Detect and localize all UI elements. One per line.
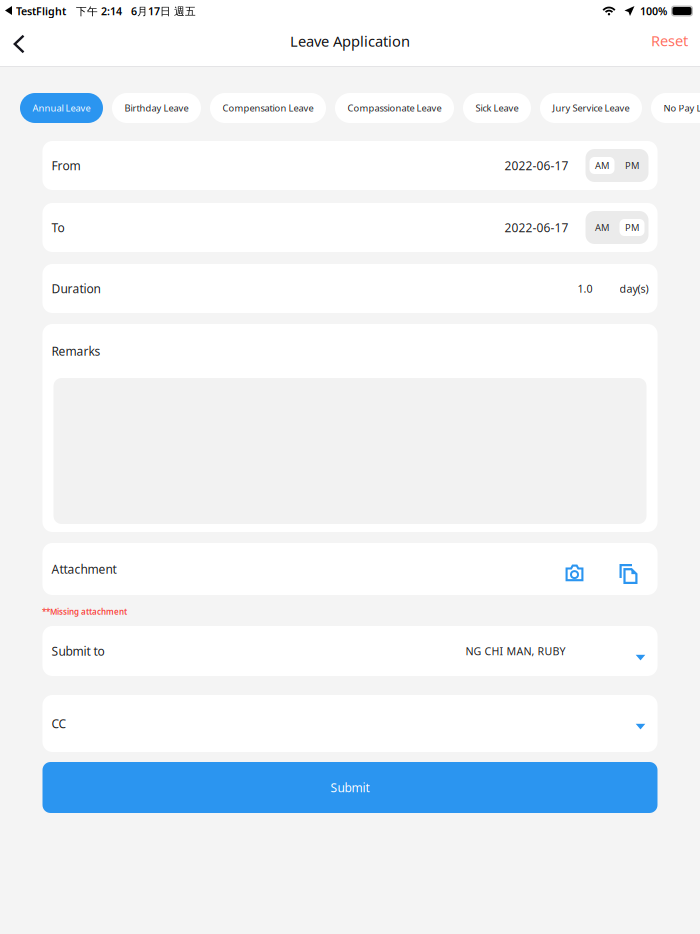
staticText: AM [595, 221, 609, 234]
staticText: Submit [330, 779, 369, 795]
staticText: To [51, 219, 64, 235]
button[interactable]: Jury Service Leave [540, 93, 642, 123]
button[interactable]: AM [589, 219, 614, 236]
staticText: AM [595, 159, 609, 172]
staticText: Duration [51, 280, 100, 296]
staticText: PM [625, 159, 639, 172]
staticText: day(s) [619, 281, 648, 296]
button[interactable]: Take photo [565, 556, 583, 581]
staticText: 100% [640, 4, 667, 18]
staticText: **Missing attachment [42, 606, 127, 617]
staticText: Birthday Leave [124, 102, 188, 114]
staticText: CC [51, 715, 66, 731]
button[interactable]: PM [619, 219, 644, 236]
staticText: Compensation Leave [222, 102, 313, 114]
staticText: Remarks [51, 343, 100, 359]
button[interactable]: Submit [42, 762, 657, 813]
staticText: Attachment [51, 561, 116, 577]
staticText: Submit to [51, 643, 104, 659]
button[interactable]: Annual Leave [20, 93, 103, 123]
button[interactable]: Back [0, 22, 38, 66]
staticText: 1.0 [577, 281, 592, 296]
staticText: NG CHI MAN, RUBY [465, 644, 565, 658]
button[interactable]: Sick Leave [463, 93, 531, 123]
button[interactable]: Reset [639, 22, 700, 66]
staticText: 2022-06-17 [504, 157, 568, 173]
staticText: From [51, 157, 80, 173]
staticText: Jury Service Leave [552, 102, 629, 114]
staticText: 下午 2:14 [76, 4, 122, 18]
staticText: Annual Leave [32, 102, 90, 114]
staticText: No Pay Leave [663, 102, 700, 114]
staticText: 6月17日 週五 [131, 4, 196, 18]
staticText: Reset [651, 31, 688, 50]
staticText: PM [625, 221, 639, 234]
staticText: TestFlight [16, 4, 66, 18]
button[interactable]: Attach document [583, 554, 637, 584]
staticText: Leave Application [290, 31, 410, 51]
button[interactable]: PM [619, 157, 644, 174]
button[interactable]: No Pay Leave [651, 93, 700, 123]
button[interactable]: Compassionate Leave [335, 93, 454, 123]
button[interactable]: Compensation Leave [210, 93, 326, 123]
staticText: 2022-06-17 [504, 219, 568, 235]
staticText: Compassionate Leave [347, 102, 441, 114]
button[interactable]: Birthday Leave [112, 93, 201, 123]
staticText: Sick Leave [475, 102, 518, 114]
button[interactable]: AM [589, 157, 614, 174]
